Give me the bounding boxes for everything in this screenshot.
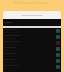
button[interactable]: General bbox=[3, 19, 61, 26]
staticText: Battery percent bbox=[4, 40, 20, 43]
button[interactable]: Adaptive battery bbox=[3, 34, 61, 40]
button[interactable]: Hide Battery Percentage bbox=[14, 1, 50, 5]
staticText: Night light bbox=[4, 58, 15, 61]
button[interactable]: Do not disturb bbox=[3, 64, 61, 70]
staticText: Adaptive battery bbox=[4, 34, 21, 37]
button[interactable]: Dark theme bbox=[3, 46, 61, 52]
button[interactable]: Auto rotate bbox=[3, 52, 61, 58]
staticText: Battery percentage bbox=[22, 14, 43, 17]
staticText: Do not disturb bbox=[4, 64, 19, 67]
staticText: General bbox=[4, 21, 13, 24]
button[interactable]: Battery percent bbox=[3, 40, 61, 46]
staticText: Hide Battery Percentage bbox=[14, 1, 50, 5]
staticText: Auto rotate bbox=[4, 52, 16, 55]
staticText: Battery saver bbox=[4, 28, 18, 31]
staticText: Dark theme bbox=[4, 46, 17, 49]
button[interactable]: Battery saver bbox=[3, 28, 61, 34]
button[interactable]: Night light bbox=[3, 58, 61, 64]
